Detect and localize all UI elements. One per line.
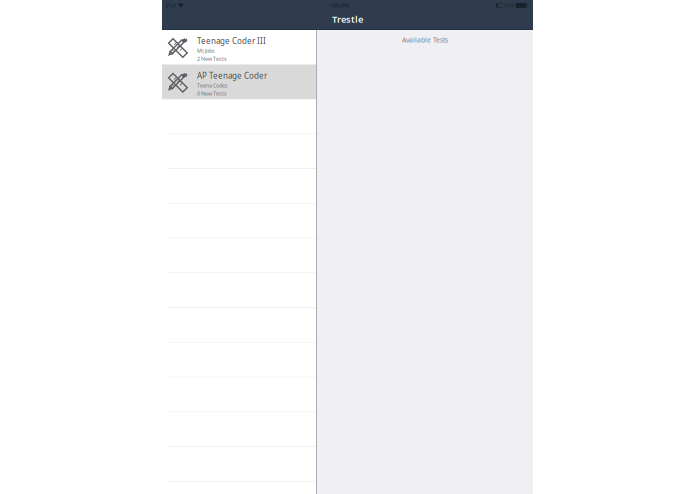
- staticText: Trestle: [332, 13, 363, 25]
- button[interactable]: AP Teenage Coder: [162, 65, 316, 100]
- staticText: 2 New Tests: [197, 55, 227, 62]
- staticText: Teenage Coder III: [197, 36, 266, 46]
- staticText: Mr. Jobs: [197, 47, 215, 54]
- staticText: AP Teenage Coder: [197, 70, 267, 81]
- staticText: iPad: [166, 2, 176, 9]
- staticText: Teena Codez: [197, 82, 228, 89]
- staticText: 0 New Tests: [197, 90, 227, 97]
- staticText: Available Tests: [402, 35, 448, 44]
- button[interactable]: Teenage Coder III: [162, 30, 316, 65]
- staticText: 94%: [503, 2, 513, 9]
- staticText: 1:05 PM: [330, 2, 349, 9]
